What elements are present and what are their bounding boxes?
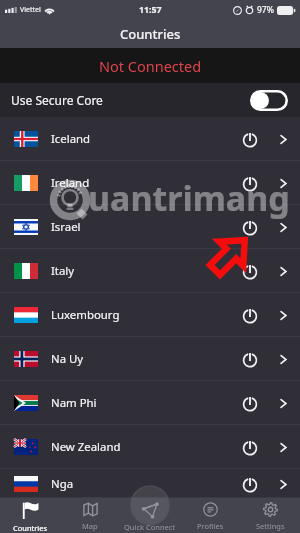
- button[interactable]: Show Iceland servers: [272, 128, 294, 150]
- staticText: Ireland: [51, 175, 90, 191]
- staticText: Na Uy: [51, 351, 84, 367]
- button[interactable]: New Zealand: [0, 425, 300, 469]
- button[interactable]: Show Na Uy servers: [272, 348, 294, 370]
- staticText: Iceland: [51, 131, 91, 147]
- staticText: Countries: [120, 25, 181, 43]
- staticText: Nam Phi: [51, 395, 97, 411]
- button[interactable]: Connect to Iceland: [235, 124, 265, 154]
- button[interactable]: Show Luxembourg servers: [272, 304, 294, 326]
- button[interactable]: Settings: [240, 498, 300, 533]
- staticText: uantrimang: [88, 175, 290, 221]
- button[interactable]: Quick Connect: [119, 498, 181, 533]
- button[interactable]: Connect to Ireland: [235, 168, 265, 198]
- staticText: Luxembourg: [51, 307, 120, 323]
- button[interactable]: Nam Phi: [0, 381, 300, 425]
- button[interactable]: Connect to Na Uy: [235, 344, 265, 374]
- button[interactable]: Ireland: [0, 161, 300, 205]
- staticText: Quick Connect: [124, 522, 176, 532]
- button[interactable]: Map: [60, 498, 120, 533]
- button[interactable]: Luxembourg: [0, 293, 300, 337]
- staticText: 97%: [257, 4, 274, 16]
- button[interactable]: Show Italy servers: [272, 260, 294, 282]
- button[interactable]: Toggle Secure Core: [250, 90, 288, 111]
- button[interactable]: Connect to New Zealand: [235, 432, 265, 462]
- staticText: Israel: [51, 219, 81, 235]
- button[interactable]: Show New Zealand servers: [272, 436, 294, 458]
- staticText: Profiles: [197, 521, 224, 531]
- button[interactable]: Iceland: [0, 117, 300, 161]
- button[interactable]: Israel: [0, 205, 300, 249]
- button[interactable]: Show Israel servers: [272, 216, 294, 238]
- button[interactable]: Show Ireland servers: [272, 172, 294, 194]
- staticText: Not Connected: [99, 56, 202, 76]
- staticText: Settings: [256, 521, 285, 531]
- button[interactable]: Connect to Nga: [235, 469, 265, 498]
- staticText: 11:57: [139, 4, 162, 16]
- button[interactable]: Connect to Italy: [235, 256, 265, 286]
- button[interactable]: Connect to Luxembourg: [235, 300, 265, 330]
- staticText: Use Secure Core: [11, 92, 103, 108]
- staticText: Map: [82, 521, 98, 531]
- staticText: Countries: [13, 523, 48, 533]
- button[interactable]: Italy: [0, 249, 300, 293]
- button[interactable]: Use Secure Core: [0, 83, 300, 117]
- button[interactable]: Connect to Israel: [235, 212, 265, 242]
- staticText: New Zealand: [51, 439, 121, 455]
- button[interactable]: Countries: [0, 498, 60, 533]
- button[interactable]: Show Nam Phi servers: [272, 392, 294, 414]
- button[interactable]: Connect to Nam Phi: [235, 388, 265, 418]
- button[interactable]: Nga: [0, 469, 300, 498]
- staticText: Nga: [51, 476, 74, 492]
- button[interactable]: Na Uy: [0, 337, 300, 381]
- staticText: Italy: [51, 263, 75, 279]
- button[interactable]: Show Nga servers: [272, 473, 294, 495]
- button[interactable]: Profiles: [180, 498, 240, 533]
- staticText: Viettel: [20, 5, 41, 15]
